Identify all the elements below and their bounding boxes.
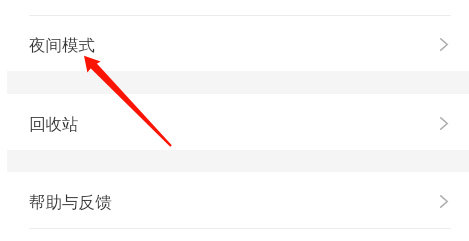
button[interactable]: 回收站 <box>0 94 469 150</box>
other: 打开帮助与反馈 <box>440 195 448 208</box>
staticText: 回收站 <box>29 114 79 135</box>
other: 打开回收站 <box>440 117 448 130</box>
staticText: 帮助与反馈 <box>29 192 112 213</box>
other: 指向夜间模式的红色箭头标注 <box>0 0 469 241</box>
button[interactable]: 帮助与反馈 <box>0 172 469 228</box>
other: 打开夜间模式 <box>440 38 448 51</box>
staticText: 夜间模式 <box>29 35 95 56</box>
button[interactable]: 夜间模式 <box>0 15 469 71</box>
